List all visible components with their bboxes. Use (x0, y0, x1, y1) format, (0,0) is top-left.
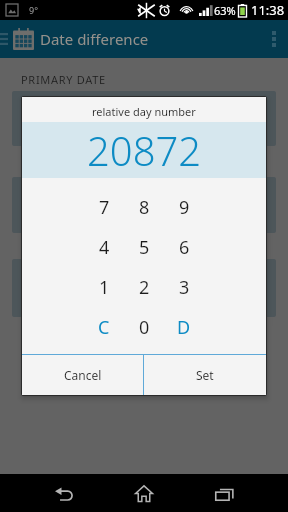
staticText: 8 (139, 195, 150, 220)
staticText: Set (196, 367, 214, 383)
staticText: 11:38 (251, 1, 285, 19)
button[interactable]: Cancel (22, 355, 143, 395)
button[interactable]: Recent apps (184, 474, 264, 512)
staticText: 6 (179, 235, 190, 260)
staticText: 0 (139, 315, 150, 340)
button[interactable]: 5 (124, 227, 164, 267)
staticText: D (177, 315, 191, 340)
button[interactable]: Home (104, 474, 184, 512)
staticText: 9 (179, 195, 190, 220)
staticText: 5 (139, 235, 150, 260)
button[interactable]: More options (260, 20, 288, 58)
staticText: 3 (179, 275, 190, 300)
staticText: 1 (99, 275, 110, 300)
staticText: 7 (99, 195, 110, 220)
staticText: 63% (214, 3, 236, 18)
button[interactable]: D (164, 307, 204, 347)
staticText: relative day number (92, 104, 196, 119)
button[interactable]: 3 (164, 267, 204, 307)
button[interactable]: C (84, 307, 124, 347)
button[interactable]: Back (24, 474, 104, 512)
staticText: Cancel (64, 367, 102, 383)
button[interactable]: 8 (124, 187, 164, 227)
staticText: Date difference (40, 29, 149, 49)
button[interactable]: 0 (124, 307, 164, 347)
button[interactable]: 1 (84, 267, 124, 307)
staticText: 2 (139, 275, 150, 300)
button[interactable]: 2 (124, 267, 164, 307)
button[interactable]: 4 (84, 227, 124, 267)
staticText: PRIMARY DATE (21, 72, 106, 87)
button[interactable]: Set (144, 355, 266, 395)
button[interactable]: 9 (164, 187, 204, 227)
button[interactable]: 7 (84, 187, 124, 227)
staticText: 9° (29, 4, 39, 16)
staticText: 4 (99, 235, 110, 260)
staticText: C (98, 315, 110, 340)
staticText: 20872 (87, 123, 202, 177)
button[interactable]: 6 (164, 227, 204, 267)
